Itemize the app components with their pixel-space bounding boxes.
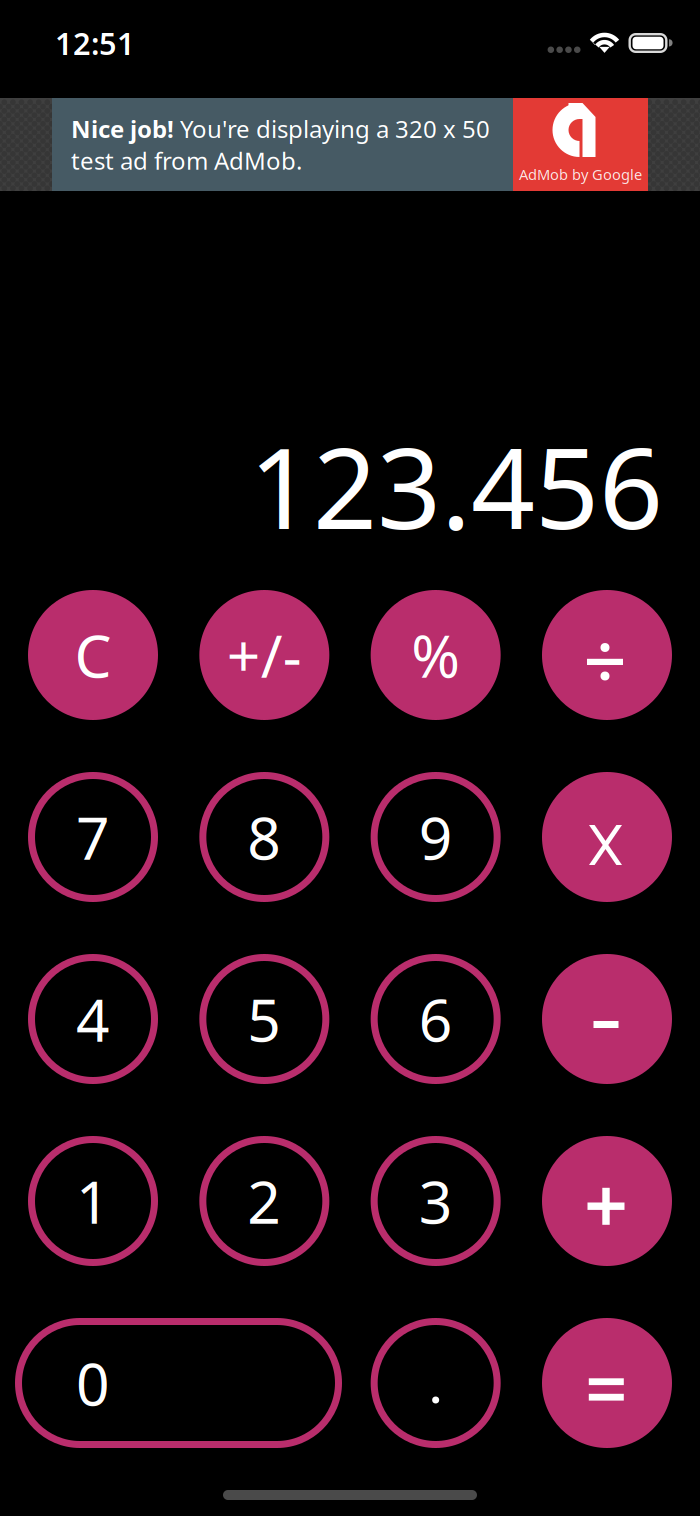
button[interactable]: 0 bbox=[28, 1318, 329, 1448]
staticText: 9 bbox=[419, 798, 453, 876]
button[interactable]: 5 bbox=[199, 954, 329, 1084]
staticText: 5 bbox=[247, 980, 281, 1058]
staticText: 6 bbox=[419, 980, 453, 1058]
button[interactable]: Plus bbox=[542, 1136, 672, 1266]
button[interactable]: Equals bbox=[542, 1318, 672, 1448]
button[interactable]: 4 bbox=[28, 954, 158, 1084]
staticText: % bbox=[411, 616, 460, 694]
staticText: 3 bbox=[419, 1162, 453, 1240]
button[interactable]: 7 bbox=[28, 772, 158, 902]
button[interactable]: Minus bbox=[542, 954, 672, 1084]
staticText: C bbox=[74, 616, 111, 694]
staticText: 7 bbox=[76, 798, 110, 876]
staticText: 0 bbox=[76, 1344, 110, 1422]
button[interactable]: 9 bbox=[371, 772, 501, 902]
staticText: 2 bbox=[247, 1162, 281, 1240]
button[interactable]: Multiply bbox=[542, 772, 672, 902]
staticText: Nice job! You're displaying a 320 x 50 t… bbox=[71, 113, 490, 176]
staticText: AdMob by Google bbox=[519, 164, 642, 184]
staticText: 12:51 bbox=[55, 23, 135, 63]
button[interactable]: % bbox=[371, 590, 501, 720]
button[interactable]: 3 bbox=[371, 1136, 501, 1266]
button[interactable]: 2 bbox=[199, 1136, 329, 1266]
staticText: 4 bbox=[76, 980, 110, 1058]
staticText: 1 bbox=[76, 1162, 110, 1240]
button[interactable]: Decimal point bbox=[371, 1318, 501, 1448]
button[interactable]: Divide bbox=[542, 590, 672, 720]
staticText: +/- bbox=[227, 616, 302, 694]
staticText: 123.456 bbox=[249, 411, 663, 560]
button[interactable]: +/- bbox=[199, 590, 329, 720]
button[interactable]: 8 bbox=[199, 772, 329, 902]
button[interactable]: C bbox=[28, 590, 158, 720]
button[interactable]: 1 bbox=[28, 1136, 158, 1266]
staticText: 8 bbox=[247, 798, 281, 876]
button[interactable]: 6 bbox=[371, 954, 501, 1084]
